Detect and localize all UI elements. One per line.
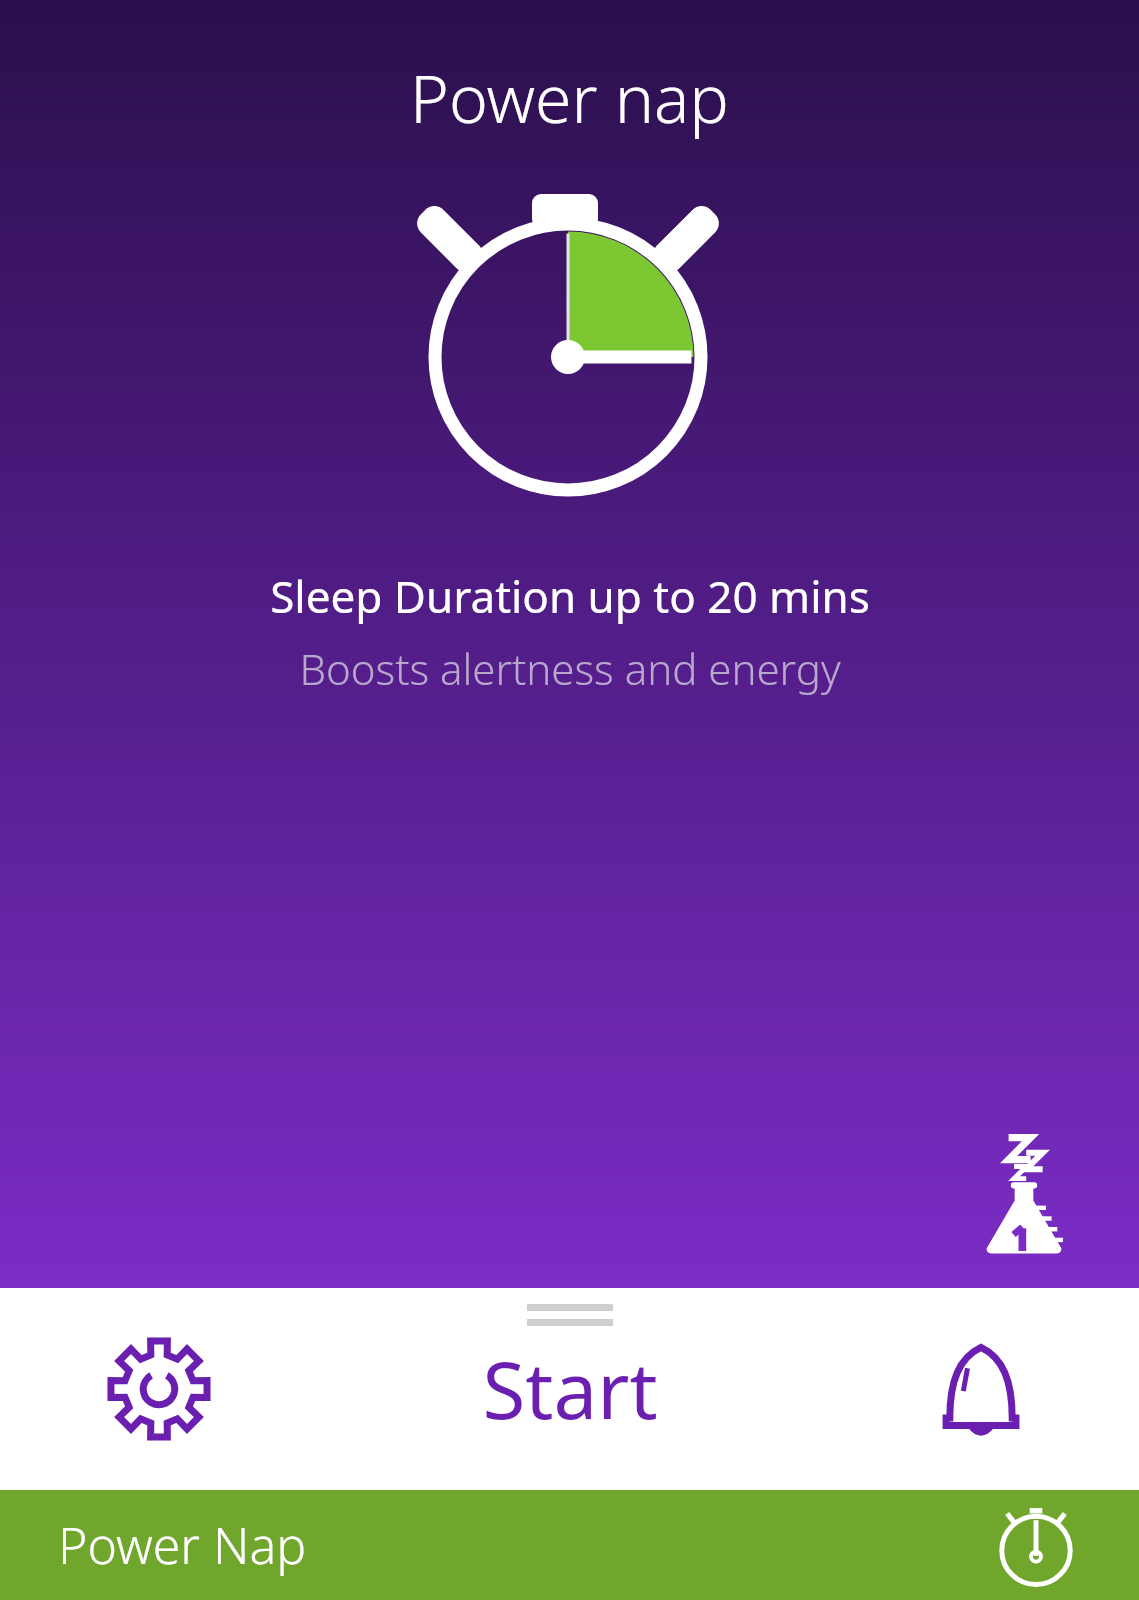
staticText: Power Nap	[58, 1511, 307, 1579]
button[interactable]: Settings	[0, 1288, 317, 1490]
staticText: Power nap	[410, 52, 729, 142]
button[interactable]: Start	[317, 1288, 823, 1490]
button[interactable]: Alarm	[823, 1288, 1139, 1490]
other: Timer	[991, 1500, 1081, 1590]
staticText: Boosts alertness and energy	[299, 640, 841, 697]
button[interactable]: Power Nap	[0, 1490, 1139, 1600]
staticText: Start	[482, 1336, 658, 1442]
button[interactable]: Sleep cycle count	[969, 1130, 1079, 1256]
staticText: Sleep Duration up to 20 mins	[270, 566, 870, 626]
